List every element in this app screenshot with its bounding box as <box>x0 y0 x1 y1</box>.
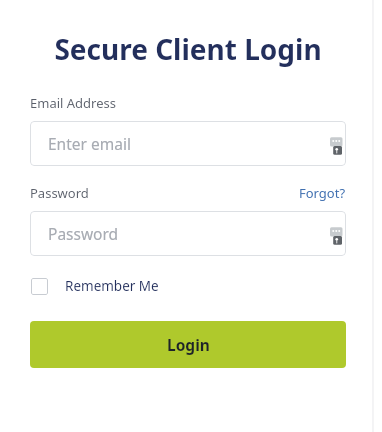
staticText: Login <box>167 334 210 355</box>
button[interactable]: Login <box>30 321 346 368</box>
button[interactable]: Email address input <box>30 121 346 166</box>
button[interactable]: Remember Me <box>31 277 159 295</box>
staticText: Password <box>48 223 119 244</box>
staticText: Secure Client Login <box>30 30 346 68</box>
staticText: Remember Me <box>65 277 159 295</box>
staticText: Forgot? <box>299 184 346 202</box>
staticText: Email Address <box>30 94 116 112</box>
staticText: Enter email <box>48 133 131 154</box>
button[interactable]: Password input <box>30 211 346 256</box>
staticText: Password <box>30 184 89 202</box>
button[interactable]: Forgot? <box>299 184 346 202</box>
